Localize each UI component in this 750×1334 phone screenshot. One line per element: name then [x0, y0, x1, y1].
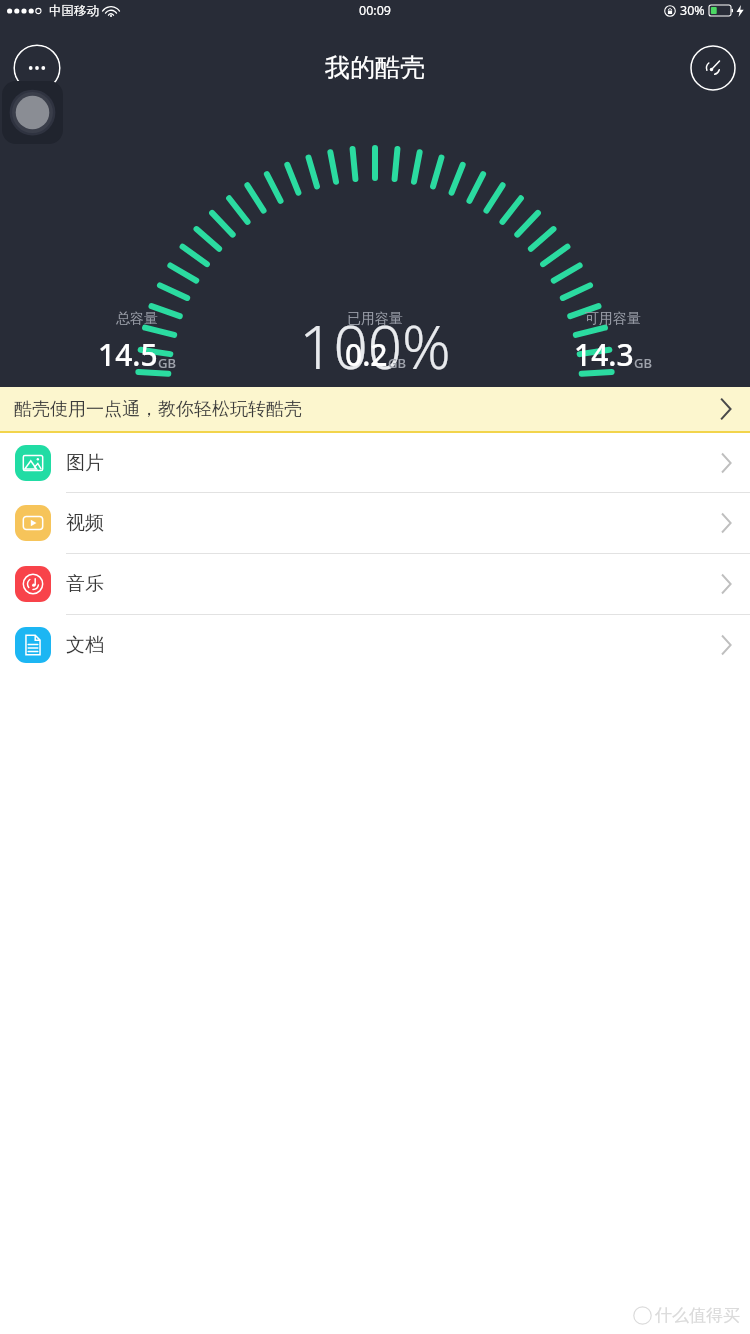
staticText: 100% [299, 305, 451, 387]
button[interactable]: 文档 [0, 615, 750, 675]
staticText: 可用容量 [585, 310, 641, 328]
button[interactable]: 视频 [0, 493, 750, 553]
staticText: GB [388, 354, 406, 372]
staticText: 30% [680, 2, 705, 19]
button[interactable]: 图片 [0, 433, 750, 492]
button[interactable]: 音乐 [0, 554, 750, 614]
staticText: 已用容量 [347, 310, 403, 328]
staticText: 14.5 [98, 334, 158, 375]
staticText: 我的酷壳 [325, 52, 425, 83]
staticText: 音乐 [66, 572, 104, 596]
staticText: 视频 [66, 511, 104, 535]
button[interactable]: Speed test [689, 44, 737, 92]
staticText: GB [634, 354, 652, 372]
staticText: 文档 [66, 633, 104, 657]
button[interactable]: More options [13, 44, 61, 92]
staticText: 酷壳使用一点通，教你轻松玩转酷壳 [14, 398, 302, 421]
staticText: 中国移动 [49, 3, 99, 19]
staticText: 0.2 [345, 334, 388, 375]
staticText: GB [158, 354, 176, 372]
staticText: 14.3 [574, 334, 634, 375]
staticText: 总容量 [116, 310, 158, 328]
staticText: 图片 [66, 451, 104, 475]
staticText: 什么值得买 [655, 1305, 740, 1326]
button[interactable]: 酷壳使用一点通，教你轻松玩转酷壳 [0, 387, 750, 431]
staticText: 00:09 [359, 2, 391, 19]
